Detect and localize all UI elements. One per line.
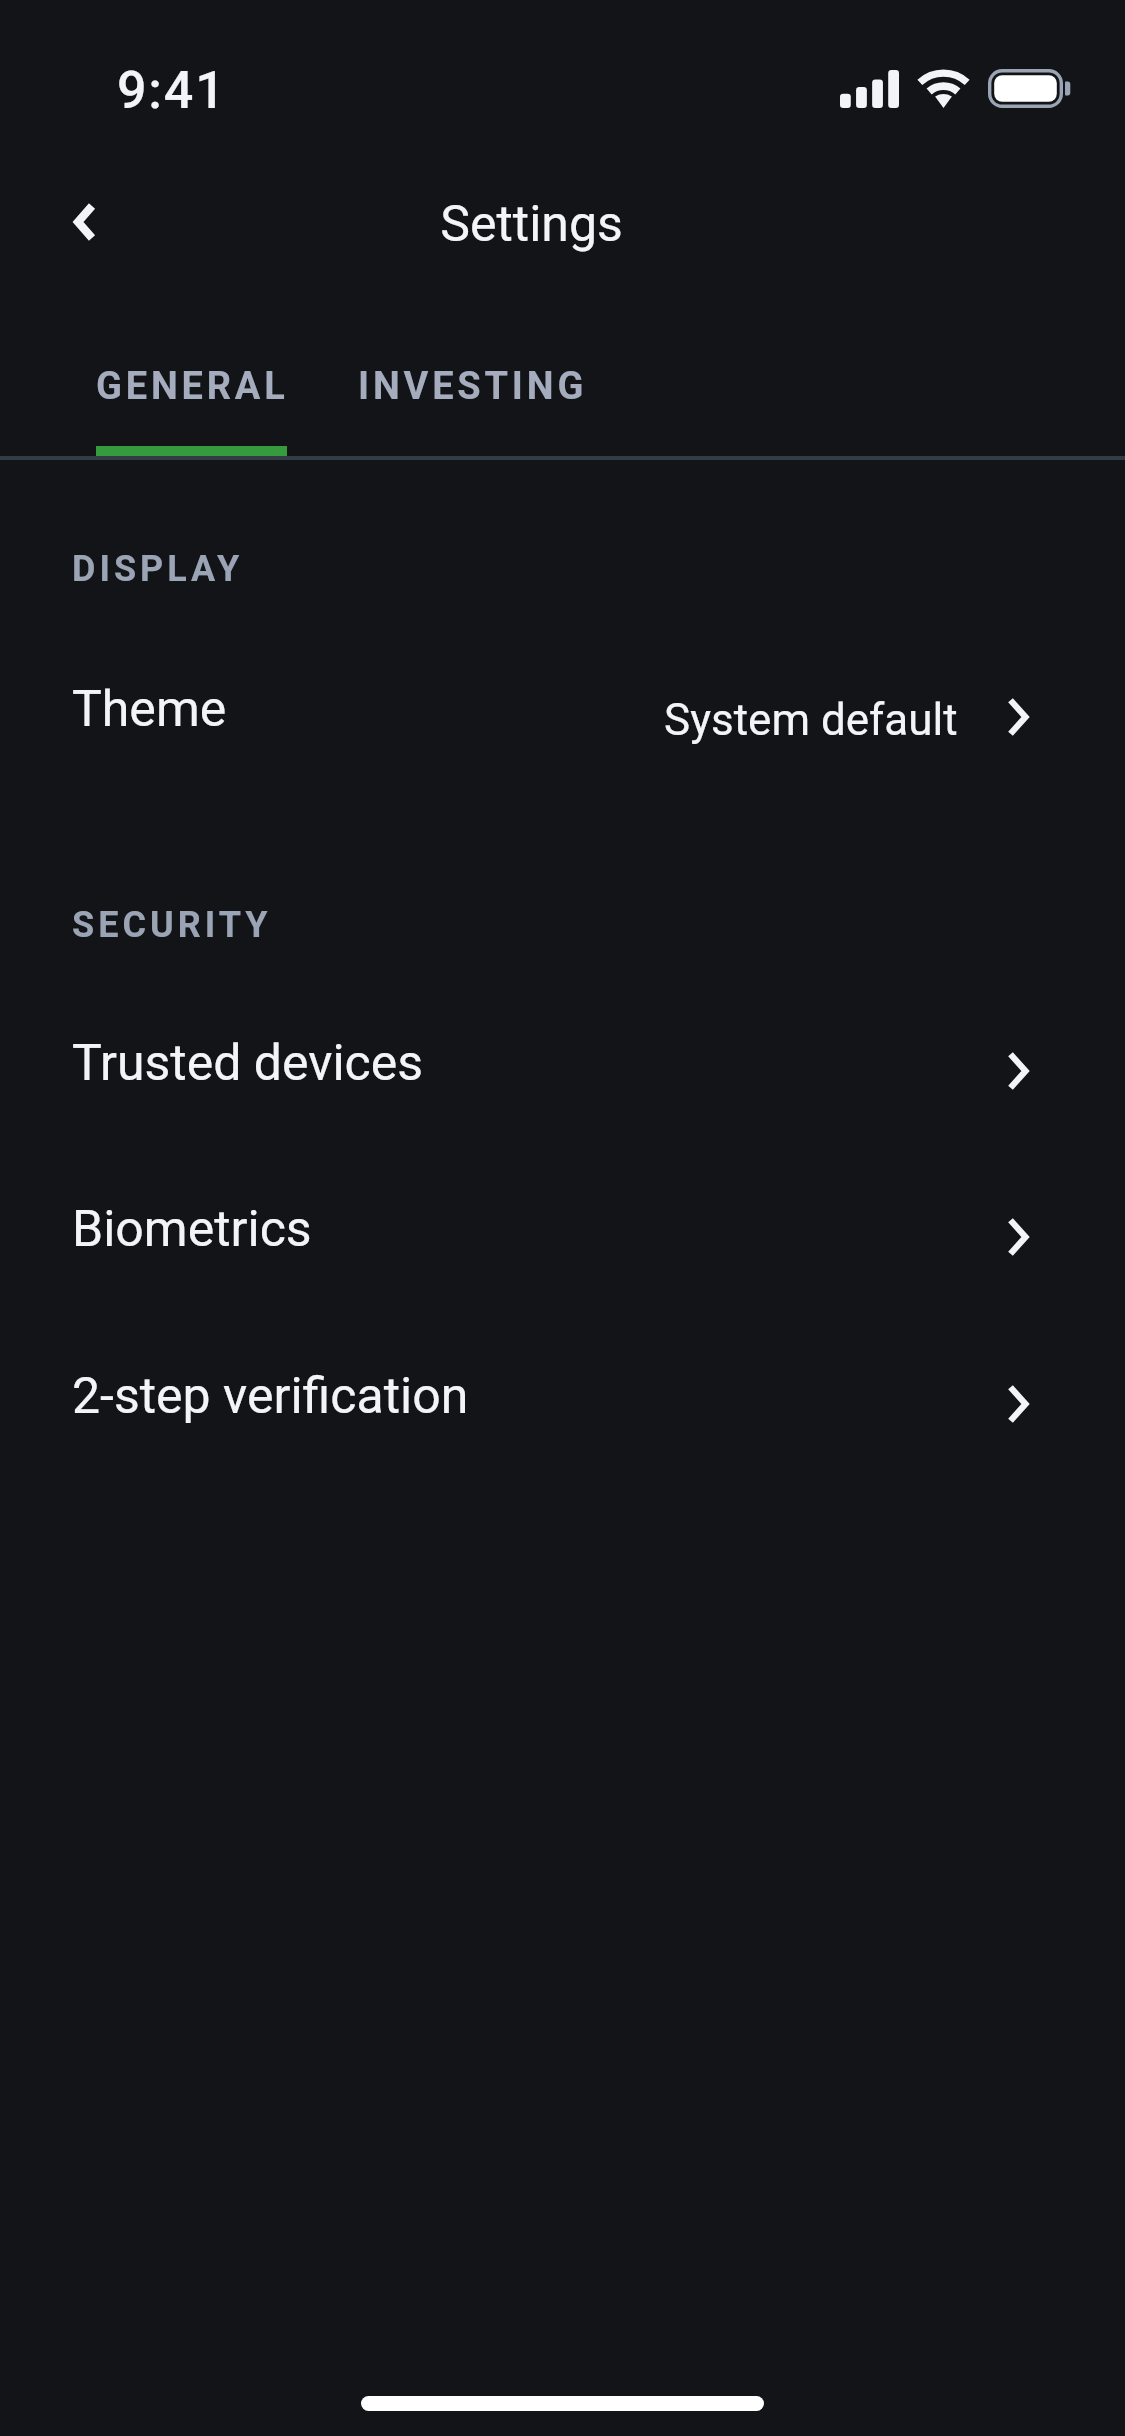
staticText: 2-step verification: [72, 1367, 469, 1426]
staticText: SECURITY: [72, 904, 272, 946]
staticText: Biometrics: [72, 1200, 312, 1259]
staticText: System default: [664, 694, 958, 746]
button[interactable]: 2-step verification: [0, 1340, 1125, 1452]
staticText: INVESTING: [358, 364, 588, 409]
button[interactable]: Trusted devices: [0, 1007, 1125, 1119]
button[interactable]: Theme: [0, 653, 1125, 765]
staticText: Trusted devices: [72, 1034, 424, 1093]
staticText: GENERAL: [96, 364, 289, 409]
staticText: 9:41: [117, 60, 227, 121]
button[interactable]: Biometrics: [0, 1173, 1125, 1285]
staticText: Settings: [0, 195, 1063, 254]
button[interactable]: INVESTING: [322, 310, 614, 456]
staticText: Theme: [72, 680, 227, 739]
button[interactable]: Back: [41, 178, 129, 266]
staticText: DISPLAY: [72, 548, 244, 590]
button[interactable]: GENERAL: [60, 310, 322, 456]
